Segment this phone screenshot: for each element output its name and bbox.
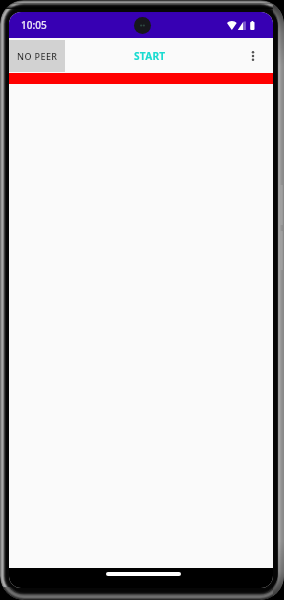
button[interactable]: NO PEER: [9, 40, 65, 72]
button[interactable]: Home: [106, 572, 181, 576]
staticText: START: [134, 49, 166, 63]
staticText: NO PEER: [17, 50, 58, 62]
button[interactable]: START: [120, 42, 180, 70]
button[interactable]: More options: [241, 44, 265, 68]
staticText: 10:05: [21, 18, 47, 32]
